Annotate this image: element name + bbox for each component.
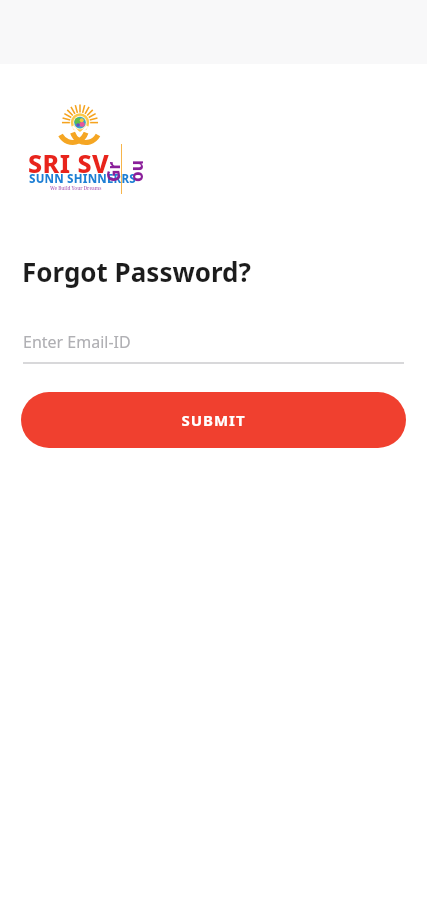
button[interactable]: SUBMIT	[21, 392, 406, 448]
staticText: SRI SV	[28, 146, 110, 180]
staticText: SUNN SHINNERRS	[29, 171, 136, 187]
staticText: Enter Email-ID	[23, 331, 131, 353]
staticText: We Build Your Dreams	[50, 185, 102, 191]
staticText: Group	[102, 158, 154, 182]
staticText: SUBMIT	[181, 410, 246, 430]
button[interactable]: Enter Email-ID	[23, 331, 404, 364]
staticText: Forgot Password?	[22, 254, 251, 289]
